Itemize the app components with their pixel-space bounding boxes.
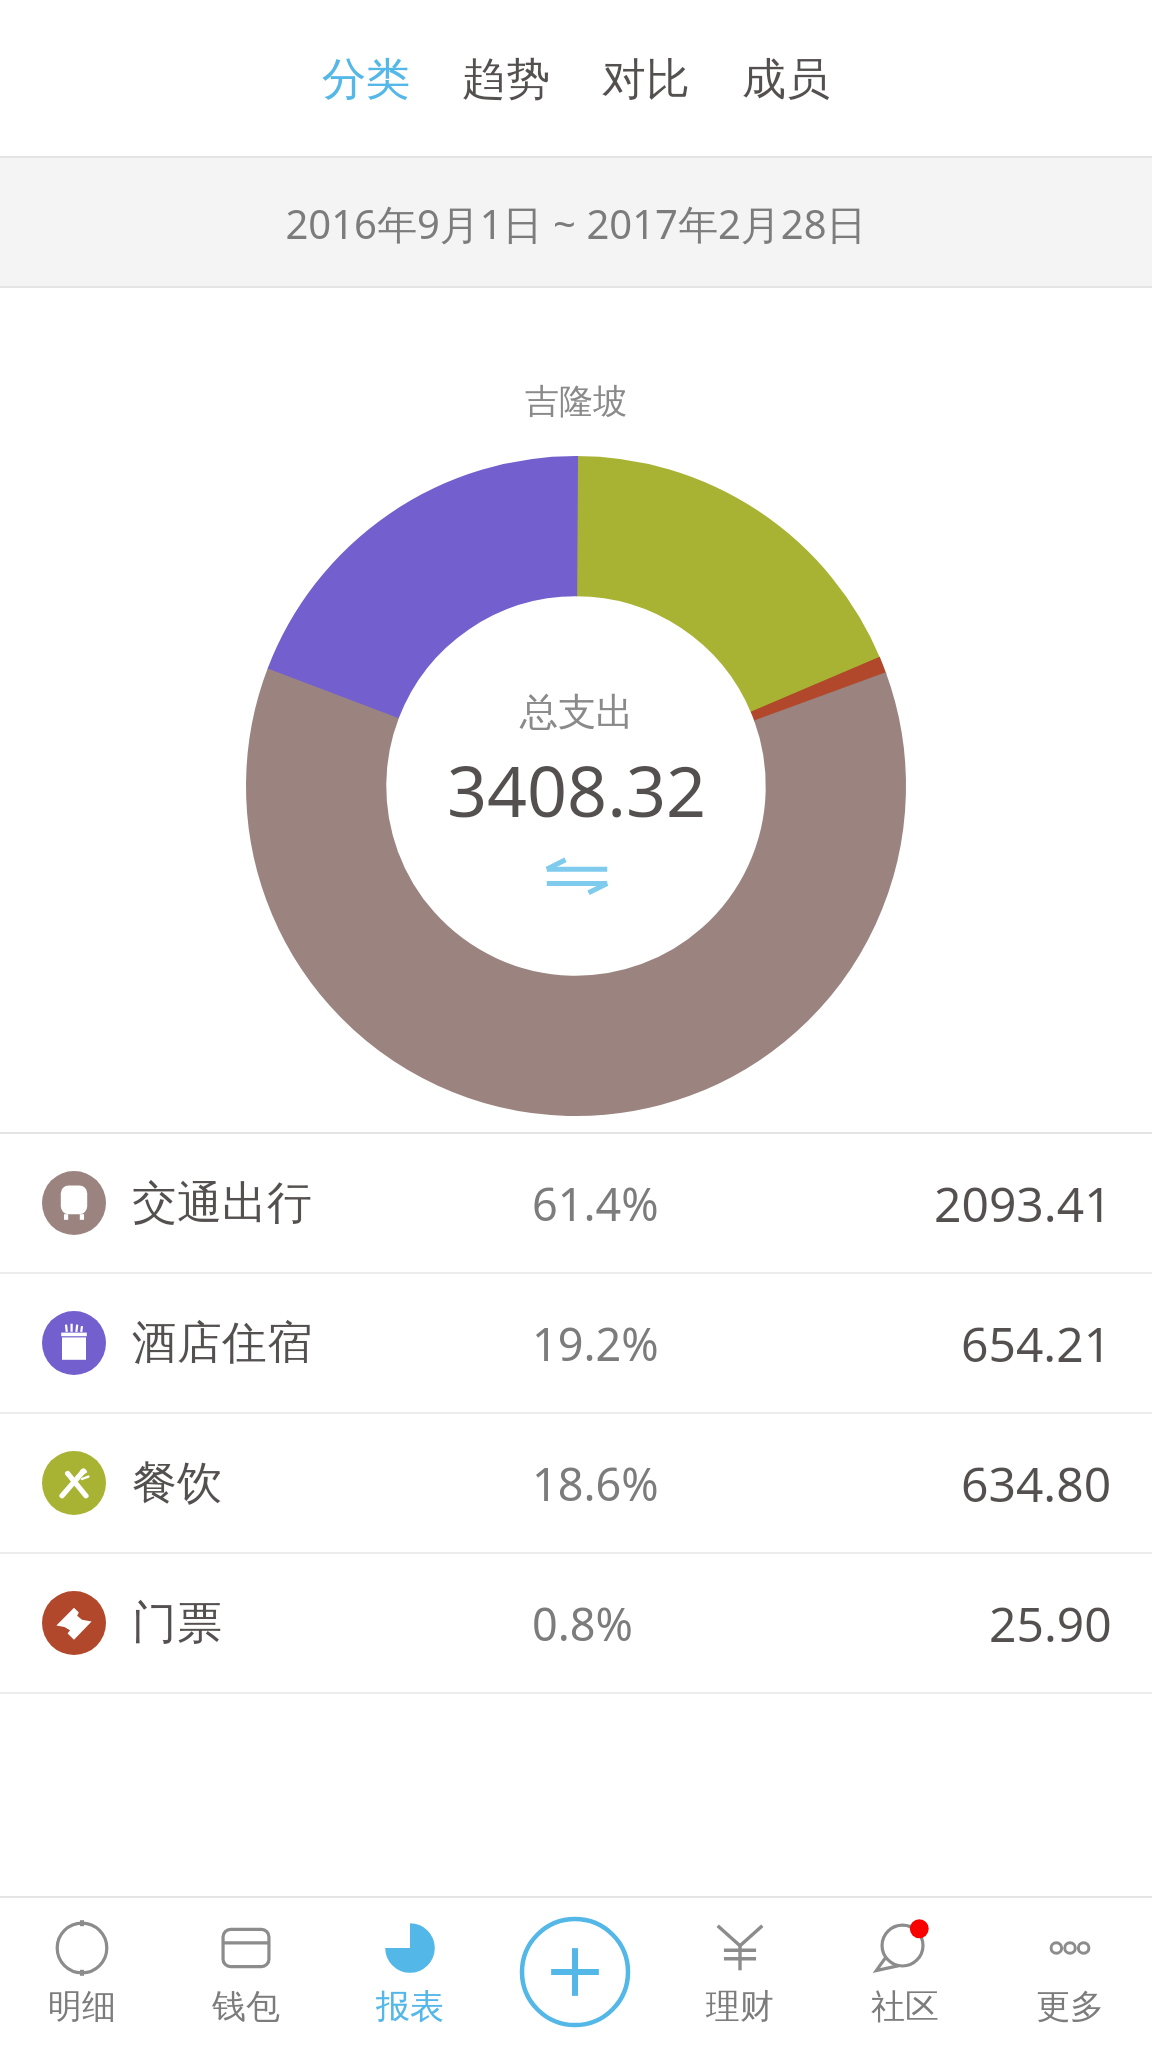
- button[interactable]: 理财 Finance: [657, 1896, 822, 2048]
- button[interactable]: Switch currency: [533, 851, 621, 901]
- button[interactable]: 2016年9月1日 ~ 2017年2月28日: [0, 158, 1152, 288]
- button[interactable]: 成员: [736, 42, 836, 117]
- button[interactable]: 酒店住宿: [0, 1274, 1152, 1412]
- staticText: 总支出: [520, 688, 634, 736]
- staticText: 趋势: [462, 52, 550, 107]
- staticText: 理财: [706, 1985, 774, 2028]
- staticText: 明细: [48, 1985, 116, 2028]
- button[interactable]: 报表 Reports: [328, 1896, 492, 2048]
- staticText: 634.80: [961, 1451, 1112, 1516]
- button[interactable]: 门票: [0, 1554, 1152, 1692]
- button[interactable]: Expense breakdown donut chart: [246, 456, 906, 1116]
- staticText: 对比: [602, 52, 690, 107]
- staticText: 成员: [742, 52, 830, 107]
- staticText: 19.2%: [532, 1313, 659, 1374]
- button[interactable]: 更多 More: [987, 1896, 1152, 2048]
- button[interactable]: 钱包 Wallet: [164, 1896, 328, 2048]
- staticText: 0.8%: [532, 1593, 633, 1654]
- staticText: 2093.41: [934, 1171, 1112, 1236]
- staticText: 2016年9月1日 ~ 2017年2月28日: [285, 196, 867, 251]
- button[interactable]: 明细 Details: [0, 1896, 164, 2048]
- button[interactable]: 社区 Community: [822, 1896, 987, 2048]
- button[interactable]: 对比: [596, 42, 696, 117]
- staticText: 更多: [1036, 1985, 1104, 2028]
- staticText: 酒店住宿: [132, 1315, 312, 1372]
- staticText: 61.4%: [532, 1173, 659, 1234]
- staticText: 吉隆坡: [525, 380, 627, 423]
- button[interactable]: 分类: [316, 42, 416, 117]
- staticText: 分类: [322, 52, 410, 107]
- staticText: 3408.32: [447, 742, 706, 837]
- staticText: 18.6%: [532, 1453, 659, 1514]
- staticText: 654.21: [961, 1311, 1112, 1376]
- staticText: 钱包: [212, 1985, 280, 2028]
- staticText: 交通出行: [132, 1175, 312, 1232]
- staticText: 餐饮: [132, 1455, 222, 1512]
- button[interactable]: 趋势: [456, 42, 556, 117]
- staticText: 25.90: [989, 1591, 1112, 1656]
- button[interactable]: 交通出行: [0, 1134, 1152, 1272]
- staticText: 社区: [871, 1985, 939, 2028]
- button[interactable]: 餐饮: [0, 1414, 1152, 1552]
- button[interactable]: Add record: [492, 1896, 657, 2048]
- staticText: 门票: [132, 1595, 222, 1652]
- staticText: 报表: [376, 1985, 444, 2028]
